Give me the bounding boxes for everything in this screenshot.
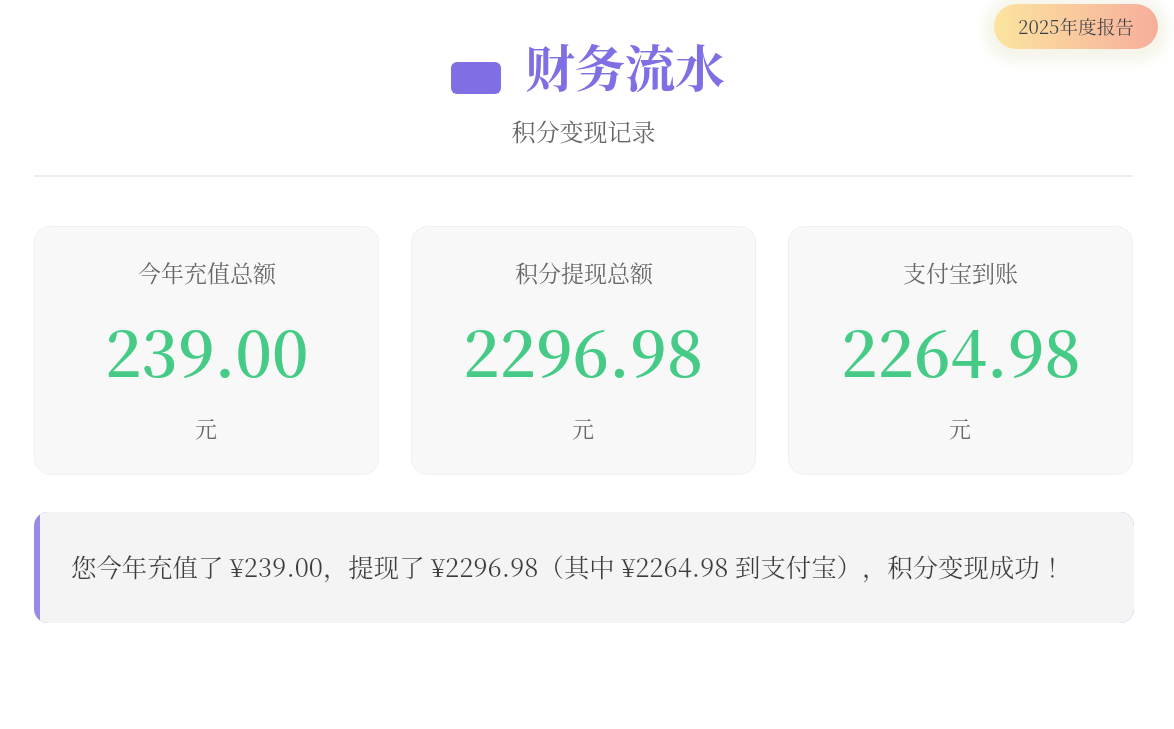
staticText: 元 xyxy=(949,412,972,444)
staticText: 元 xyxy=(572,412,595,444)
button[interactable]: 今年充值总额 xyxy=(34,226,379,475)
staticText: 积分变现记录 xyxy=(34,113,1133,147)
button[interactable]: 积分提现总额 xyxy=(411,226,756,475)
button[interactable]: 您今年充值了 ¥239.00，提现了 ¥2296.98（其中 ¥2264.98 … xyxy=(34,512,1134,623)
staticText: 积分提现总额 xyxy=(515,256,653,289)
staticText: 2025年度报告 xyxy=(1018,13,1134,40)
staticText: 元 xyxy=(195,412,218,444)
staticText: 2264.98 xyxy=(841,304,1081,395)
staticText: 2296.98 xyxy=(463,304,704,395)
staticText: 支付宝到账 xyxy=(903,256,1018,289)
staticText: 今年充值总额 xyxy=(138,256,276,289)
staticText: 财务流水 xyxy=(525,29,725,101)
button[interactable]: 2025年度报告 xyxy=(994,4,1158,49)
staticText: 239.00 xyxy=(105,304,309,395)
button[interactable]: 支付宝到账 xyxy=(788,226,1133,475)
staticText: 您今年充值了 ¥239.00，提现了 ¥2296.98（其中 ¥2264.98 … xyxy=(71,548,1066,584)
